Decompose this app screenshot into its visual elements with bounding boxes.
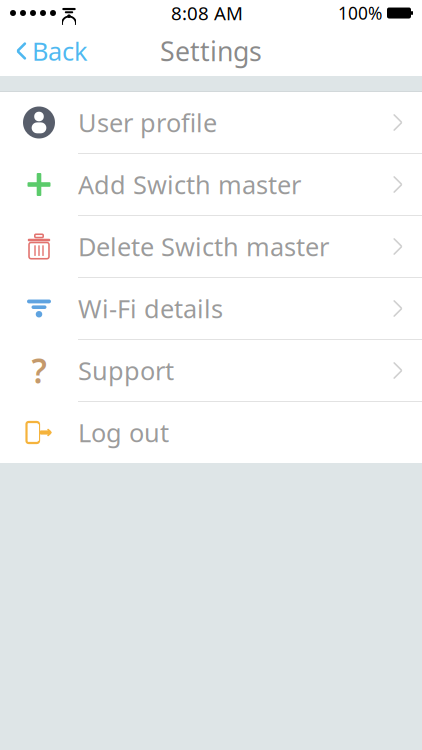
button[interactable]: Delete Swicth master: [0, 216, 422, 277]
staticText: 100%: [338, 1, 382, 24]
staticText: Support: [78, 354, 174, 387]
button[interactable]: Wi-Fi details: [0, 278, 422, 339]
button[interactable]: User profile: [0, 92, 422, 153]
button[interactable]: Back: [0, 26, 100, 76]
staticText: User profile: [78, 106, 217, 139]
staticText: Add Swicth master: [78, 168, 301, 201]
staticText: 8:08 AM: [171, 1, 243, 25]
staticText: Back: [32, 34, 88, 68]
button[interactable]: Log out: [0, 402, 422, 463]
button[interactable]: Add Swicth master: [0, 154, 422, 215]
button[interactable]: ?: [0, 340, 422, 401]
staticText: Settings: [160, 33, 262, 69]
staticText: ?: [31, 348, 46, 393]
staticText: Delete Swicth master: [78, 230, 329, 263]
staticText: Wi-Fi details: [78, 292, 223, 325]
staticText: Log out: [78, 416, 169, 449]
